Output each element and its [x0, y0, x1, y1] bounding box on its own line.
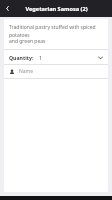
staticText: and green peas	[9, 38, 46, 45]
staticText: Vegetarian Samosa (2)	[25, 5, 88, 13]
button[interactable]: Back	[0, 1, 15, 16]
staticText: Quantity:	[9, 54, 34, 61]
staticText: Traditional pastry stuffed with spiced p…	[9, 24, 103, 38]
button[interactable]: Name	[4, 65, 108, 78]
button[interactable]: Quantity:	[4, 50, 108, 64]
staticText: 1	[39, 54, 42, 61]
staticText: Name	[19, 68, 34, 75]
